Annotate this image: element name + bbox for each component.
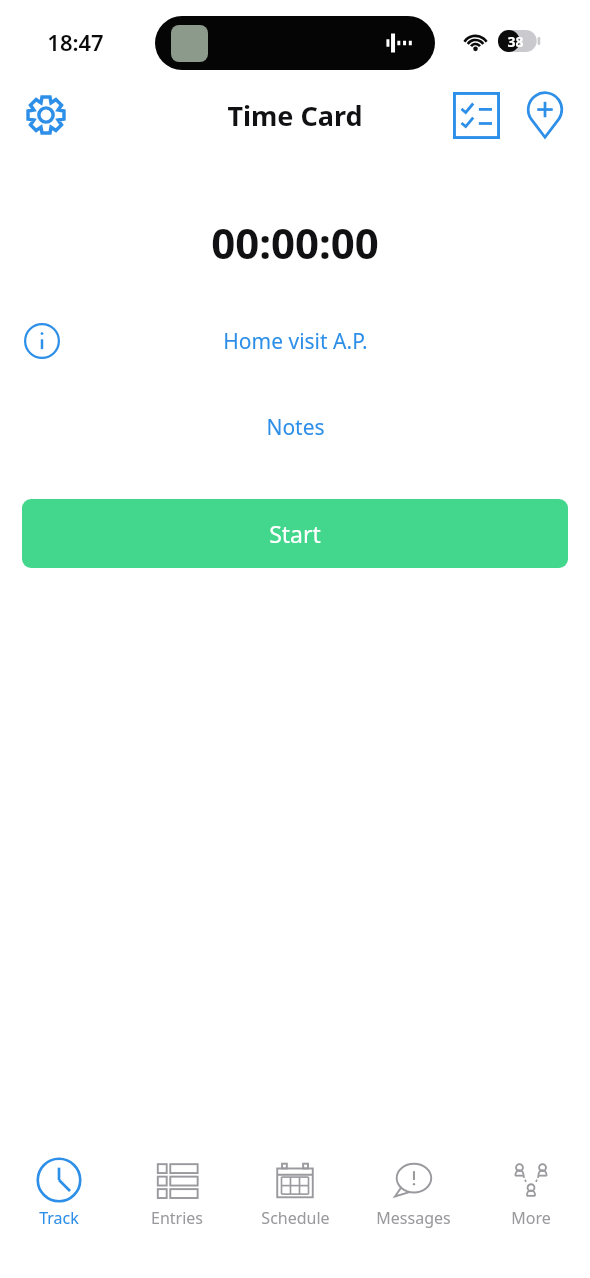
staticText: 18:47 [47, 27, 104, 57]
button[interactable]: Track [0, 1140, 118, 1236]
button[interactable]: Schedule [236, 1140, 354, 1236]
staticText: Home visit A.P. [223, 327, 368, 356]
button[interactable]: Checklist [446, 86, 506, 144]
button[interactable]: More [472, 1140, 590, 1236]
staticText: More [511, 1207, 551, 1229]
staticText: Track [39, 1207, 79, 1229]
button[interactable]: Start [22, 499, 568, 568]
button[interactable]: Settings [14, 86, 78, 144]
staticText: 00:00:00 [211, 214, 379, 271]
staticText: Time Card [227, 97, 363, 134]
staticText: 38 [507, 32, 524, 51]
staticText: Entries [151, 1207, 203, 1229]
staticText: Schedule [261, 1207, 330, 1229]
button[interactable]: Add location [515, 86, 575, 144]
staticText: Start [269, 518, 321, 549]
button[interactable]: Notes [250, 409, 341, 446]
button[interactable]: Job information [20, 319, 64, 363]
button[interactable]: Messages [354, 1140, 472, 1236]
staticText: Notes [266, 413, 325, 442]
button[interactable]: Home visit A.P. [211, 323, 380, 360]
button[interactable]: Entries [118, 1140, 236, 1236]
staticText: Messages [376, 1207, 451, 1229]
